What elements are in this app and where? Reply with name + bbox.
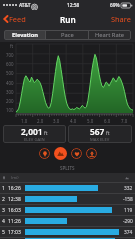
- staticText: 16:03: [8, 207, 21, 214]
- button[interactable]: 2: [0, 194, 135, 204]
- button[interactable]: Shoes: [86, 148, 97, 159]
- staticText: 2,001: [21, 126, 43, 137]
- staticText: 700: [6, 52, 14, 58]
- staticText: 119: [124, 207, 133, 214]
- button[interactable]: 1: [0, 183, 135, 193]
- staticText: MAX ELEV: [90, 137, 110, 143]
- button[interactable]: Elevation: [4, 30, 45, 40]
- staticText: 600: [6, 61, 14, 67]
- button[interactable]: Share: [107, 11, 135, 27]
- staticText: 2.0: [37, 118, 44, 124]
- button[interactable]: Feed: [0, 11, 30, 27]
- staticText: 5: [2, 229, 5, 236]
- button[interactable]: 3: [0, 205, 135, 215]
- staticText: Run: [60, 14, 76, 25]
- staticText: 200: [6, 98, 14, 104]
- staticText: 17:03: [8, 229, 21, 236]
- staticText: 2: [2, 196, 5, 203]
- staticText: 69%: [110, 2, 120, 9]
- staticText: 332: [124, 185, 133, 192]
- staticText: 12:58: [67, 2, 80, 9]
- staticText: SPLITS: [60, 165, 75, 171]
- staticText: Pace: [61, 31, 74, 39]
- button[interactable]: 5: [0, 227, 135, 237]
- staticText: ELEV GAIN: [24, 137, 45, 143]
- staticText: 11:26: [8, 218, 21, 225]
- button[interactable]: 2,001: [3, 125, 66, 143]
- staticText: AT&T: [19, 2, 31, 9]
- staticText: 5.0: [87, 118, 94, 124]
- staticText: -290: [123, 218, 133, 225]
- button[interactable]: Map: [39, 148, 50, 159]
- staticText: ft: [44, 130, 48, 137]
- button[interactable]: 6: [0, 238, 135, 239]
- staticText: 1.0: [21, 118, 28, 124]
- staticText: 1: [2, 185, 5, 192]
- staticText: 6.0: [104, 118, 111, 124]
- staticText: 374: [124, 229, 133, 236]
- staticText: 12:38: [8, 196, 21, 203]
- staticText: 3.0: [53, 118, 60, 124]
- button[interactable]: Heart rate: [71, 148, 82, 159]
- staticText: -158: [123, 196, 133, 203]
- staticText: ft: [10, 43, 14, 49]
- button[interactable]: 4: [0, 216, 135, 226]
- button[interactable]: 567: [68, 125, 132, 143]
- button[interactable]: Pace: [46, 30, 88, 40]
- staticText: 100: [6, 107, 14, 113]
- staticText: 7.0: [121, 118, 128, 124]
- staticText: Feed: [9, 14, 26, 24]
- staticText: Elevation: [12, 31, 38, 39]
- staticText: 400: [6, 80, 14, 86]
- button[interactable]: Elevation: [54, 147, 67, 160]
- button[interactable]: Heart Rate: [89, 30, 131, 40]
- staticText: (mi): [11, 175, 19, 181]
- staticText: Share: [111, 14, 131, 24]
- staticText: 300: [6, 89, 14, 95]
- staticText: 3: [2, 207, 5, 214]
- staticText: 4.0: [70, 118, 77, 124]
- staticText: 16:26: [8, 185, 21, 192]
- staticText: Heart Rate: [95, 31, 125, 39]
- staticText: ft: [106, 130, 110, 137]
- staticText: 567: [90, 126, 105, 137]
- staticText: 4: [2, 218, 5, 225]
- staticText: 500: [6, 70, 14, 76]
